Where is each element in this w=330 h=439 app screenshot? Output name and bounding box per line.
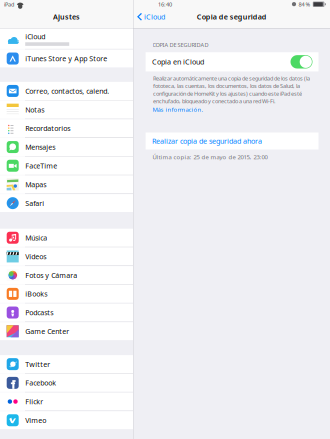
staticText: Vídeos xyxy=(25,252,46,261)
button[interactable]: Recordatorios xyxy=(0,119,133,137)
staticText: Mensajes xyxy=(25,142,55,152)
staticText: Game Center xyxy=(25,326,69,336)
staticText: FaceTime xyxy=(25,161,57,170)
staticText: Flickr xyxy=(25,397,43,406)
staticText: iPad xyxy=(4,0,14,8)
button[interactable]: Copia en iCloud xyxy=(146,52,318,71)
staticText: Más información. xyxy=(153,105,204,113)
staticText: Ajustes xyxy=(53,12,80,22)
staticText: Vimeo xyxy=(25,415,46,425)
button[interactable]: Vimeo xyxy=(0,411,133,429)
staticText: iCloud xyxy=(144,12,165,22)
button[interactable]: iCloud xyxy=(0,29,133,49)
button[interactable]: Mensajes xyxy=(0,138,133,156)
button[interactable]: Facebook xyxy=(0,374,133,392)
button[interactable]: Safari xyxy=(0,194,133,212)
button[interactable]: Flickr xyxy=(0,392,133,411)
button[interactable]: Fotos y Cámara xyxy=(0,266,133,284)
button[interactable]: Más información. xyxy=(134,105,204,113)
staticText: Facebook xyxy=(25,378,56,388)
staticText: Safari xyxy=(25,198,44,208)
staticText: iTunes Store y App Store xyxy=(25,54,107,63)
staticText: Recordatorios xyxy=(25,123,70,133)
staticText: COPIA DE SEGURIDAD xyxy=(153,41,209,49)
button[interactable]: iTunes Store y App Store xyxy=(0,49,133,68)
staticText: Última copia: 25 de mayo de 2015, 23:00 xyxy=(153,153,268,161)
staticText: Podcasts xyxy=(25,308,53,317)
button[interactable]: iBooks xyxy=(0,285,133,303)
staticText: Fotos y Cámara xyxy=(25,270,77,280)
staticText: iBooks xyxy=(25,289,47,299)
staticText: Copia en iCloud xyxy=(152,57,204,67)
staticText: Copia de seguridad xyxy=(197,12,267,22)
button[interactable]: Mapas xyxy=(0,175,133,193)
staticText: Twitter xyxy=(25,359,50,369)
button[interactable]: Música xyxy=(0,229,133,247)
button[interactable]: iCloud xyxy=(134,9,169,25)
button[interactable]: Realizar copia de seguridad ahora xyxy=(146,132,318,149)
staticText: Correo, contactos, calend. xyxy=(25,86,109,96)
button[interactable]: Game Center xyxy=(0,322,133,340)
button[interactable]: Correo, contactos, calend. xyxy=(0,82,133,100)
staticText: Mapas xyxy=(25,180,46,189)
staticText: 84 % xyxy=(299,0,311,8)
staticText: 16:40 xyxy=(158,0,172,8)
staticText: Notas xyxy=(25,105,44,114)
button[interactable]: FaceTime xyxy=(0,157,133,175)
button[interactable]: Notas xyxy=(0,101,133,119)
button[interactable]: Twitter xyxy=(0,355,133,373)
button[interactable]: Podcasts xyxy=(0,303,133,322)
staticText: Realizar copia de seguridad ahora xyxy=(152,136,262,146)
staticText: Música xyxy=(25,233,47,242)
staticText: iCloud xyxy=(25,32,45,41)
button[interactable]: Vídeos xyxy=(0,247,133,265)
staticText: Realizar automáticamente una copia de se… xyxy=(153,74,310,105)
